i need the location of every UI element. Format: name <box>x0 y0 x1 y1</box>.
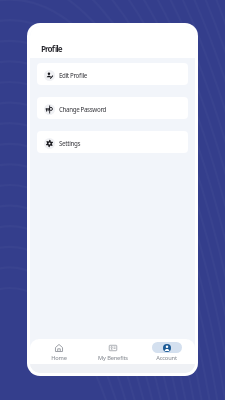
staticText: My Benefits <box>98 354 128 362</box>
staticText: Account <box>156 354 177 362</box>
staticText: Edit Profile <box>59 71 87 79</box>
button[interactable]: My Benefits <box>90 342 135 362</box>
staticText: Settings <box>59 139 81 147</box>
button[interactable]: Edit Profile <box>37 63 188 85</box>
button[interactable]: Home <box>36 342 81 362</box>
staticText: Profile <box>41 43 62 54</box>
staticText: Change Password <box>59 105 106 113</box>
button[interactable]: Settings <box>37 131 188 153</box>
staticText: Home <box>51 354 67 362</box>
button[interactable]: Change Password <box>37 97 188 119</box>
button[interactable]: Account <box>144 342 189 362</box>
